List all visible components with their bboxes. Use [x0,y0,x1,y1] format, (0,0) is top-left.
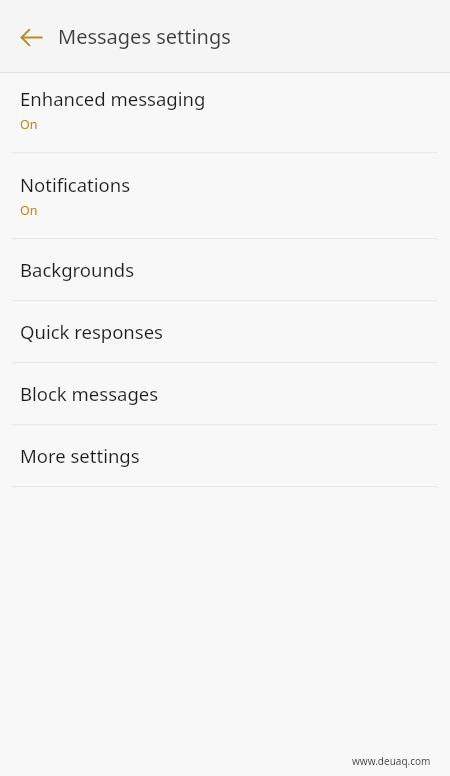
staticText: On [20,116,38,133]
staticText: www.deuaq.com [352,754,431,768]
button[interactable]: More settings [0,431,450,480]
button[interactable]: Notifications [0,159,450,232]
button[interactable]: Backgrounds [0,245,450,294]
staticText: Notifications [20,172,131,197]
staticText: Messages settings [58,23,231,50]
staticText: Enhanced messaging [20,86,206,111]
staticText: Block messages [20,381,159,406]
staticText: Quick responses [20,319,163,344]
button[interactable]: Back [9,15,53,59]
button[interactable]: Block messages [0,369,450,418]
staticText: On [20,202,38,219]
staticText: Backgrounds [20,257,135,282]
staticText: More settings [20,443,140,468]
button[interactable]: Enhanced messaging [0,73,450,146]
button[interactable]: Quick responses [0,307,450,356]
